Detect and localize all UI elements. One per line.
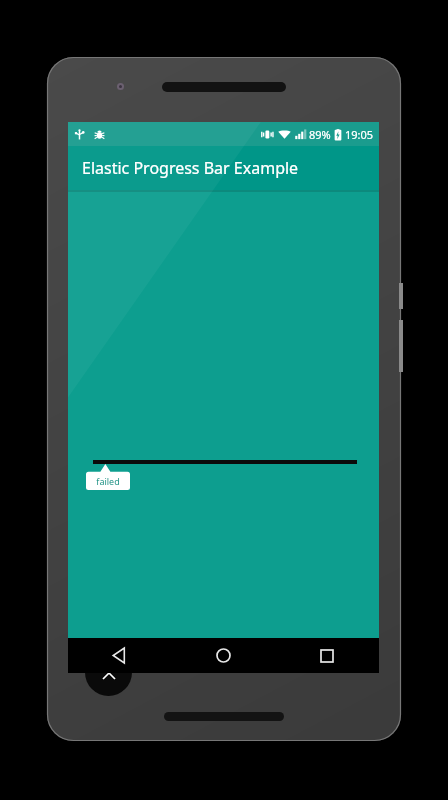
button[interactable]: Home	[171, 638, 275, 673]
staticText: 19:05	[345, 127, 374, 142]
button[interactable]: Cancel	[85, 649, 132, 696]
button[interactable]: Recent apps	[275, 638, 379, 673]
button[interactable]: failed	[86, 464, 130, 490]
button[interactable]: Elastic Progress Bar Example	[68, 146, 379, 190]
staticText: failed	[96, 475, 120, 487]
staticText: Elastic Progress Bar Example	[82, 157, 299, 179]
button[interactable]: Back	[68, 638, 171, 673]
staticText: 89%	[309, 127, 331, 142]
